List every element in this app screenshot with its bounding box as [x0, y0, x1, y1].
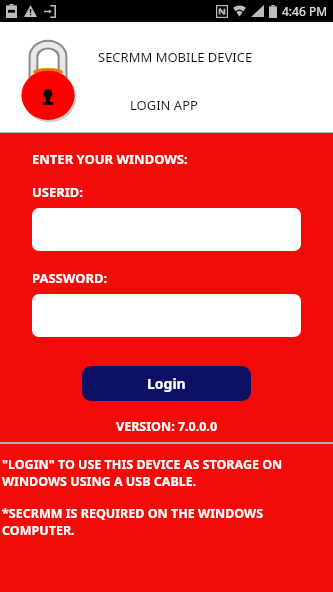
staticText: "LOGIN" TO USE THIS DEVICE AS STORAGE ON… [2, 456, 329, 489]
button[interactable] [32, 208, 301, 251]
staticText: *SECRMM IS REQUIRED ON THE WINDOWS COMPU… [2, 505, 331, 538]
staticText: PASSWORD: [32, 269, 108, 287]
button[interactable] [32, 294, 301, 337]
staticText: USERID: [32, 183, 84, 201]
staticText: VERSION: 7.0.0.0 [116, 418, 218, 435]
staticText: SECRMM MOBILE DEVICE [98, 48, 253, 66]
staticText: ENTER YOUR WINDOWS: [32, 150, 188, 168]
staticText: 4:46 PM [282, 3, 328, 19]
button[interactable]: Login [82, 366, 251, 401]
staticText: Login [147, 374, 186, 393]
staticText: LOGIN APP [130, 96, 198, 114]
